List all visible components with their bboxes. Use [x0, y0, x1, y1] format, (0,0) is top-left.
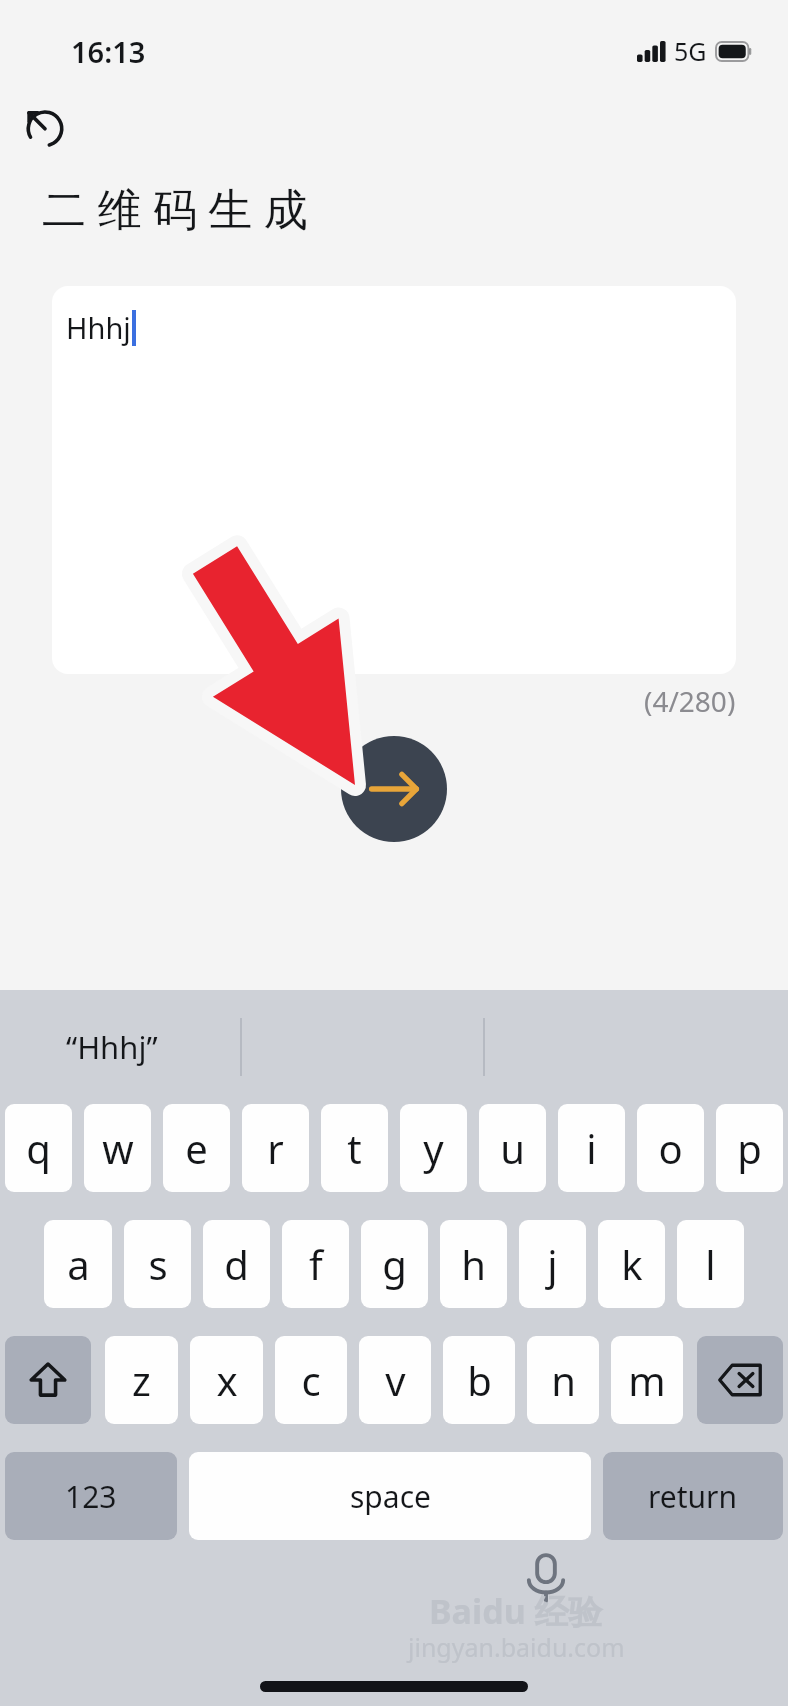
- button[interactable]: x: [190, 1336, 263, 1424]
- button[interactable]: y: [400, 1104, 467, 1192]
- button[interactable]: return: [603, 1452, 783, 1540]
- staticText: Baidu 经验: [429, 1588, 603, 1634]
- button[interactable]: t: [321, 1104, 388, 1192]
- staticText: k: [621, 1237, 643, 1291]
- staticText: e: [185, 1121, 208, 1175]
- staticText: t: [347, 1121, 362, 1175]
- button[interactable]: d: [203, 1220, 270, 1308]
- button[interactable]: b: [443, 1336, 515, 1424]
- button[interactable]: a: [44, 1220, 112, 1308]
- button[interactable]: e: [163, 1104, 230, 1192]
- staticText: y: [423, 1121, 444, 1175]
- button[interactable]: c: [275, 1336, 347, 1424]
- staticText: Hhhj: [66, 308, 131, 347]
- button[interactable]: f: [282, 1220, 349, 1308]
- staticText: r: [267, 1121, 284, 1175]
- button[interactable]: l: [677, 1220, 744, 1308]
- staticText: p: [737, 1121, 762, 1175]
- button[interactable]: Shift: [5, 1336, 91, 1424]
- staticText: i: [586, 1121, 597, 1175]
- staticText: g: [382, 1237, 407, 1291]
- staticText: n: [551, 1353, 576, 1407]
- button[interactable]: “Hhhj”: [66, 1026, 158, 1068]
- staticText: q: [26, 1121, 51, 1175]
- staticText: return: [648, 1476, 738, 1517]
- staticText: 16:13: [71, 32, 146, 71]
- staticText: jingyan.baidu.com: [408, 1630, 625, 1664]
- button[interactable]: Generate QR code: [341, 736, 447, 842]
- staticText: w: [102, 1121, 134, 1175]
- staticText: s: [148, 1237, 168, 1291]
- staticText: o: [658, 1121, 683, 1175]
- button[interactable]: History: [14, 96, 76, 158]
- staticText: l: [705, 1237, 716, 1291]
- staticText: u: [500, 1121, 525, 1175]
- staticText: 123: [65, 1476, 117, 1517]
- staticText: f: [309, 1237, 323, 1291]
- staticText: b: [467, 1353, 492, 1407]
- staticText: d: [224, 1237, 249, 1291]
- staticText: j: [547, 1237, 558, 1291]
- staticText: x: [216, 1353, 238, 1407]
- staticText: h: [461, 1237, 486, 1291]
- button[interactable]: space: [189, 1452, 591, 1540]
- staticText: v: [385, 1353, 406, 1407]
- button[interactable]: g: [361, 1220, 428, 1308]
- button[interactable]: i: [558, 1104, 625, 1192]
- button[interactable]: s: [124, 1220, 191, 1308]
- staticText: 5G: [674, 34, 707, 68]
- button[interactable]: j: [519, 1220, 586, 1308]
- button[interactable]: r: [242, 1104, 309, 1192]
- button[interactable]: v: [359, 1336, 431, 1424]
- staticText: z: [132, 1353, 151, 1407]
- button[interactable]: p: [716, 1104, 783, 1192]
- button[interactable]: n: [527, 1336, 599, 1424]
- button[interactable]: k: [598, 1220, 665, 1308]
- button[interactable]: Dictation: [514, 1546, 578, 1610]
- button[interactable]: z: [105, 1336, 178, 1424]
- button[interactable]: Backspace: [697, 1336, 783, 1424]
- button[interactable]: q: [5, 1104, 72, 1192]
- staticText: (4/280): [644, 682, 736, 720]
- button[interactable]: m: [611, 1336, 683, 1424]
- button[interactable]: w: [84, 1104, 151, 1192]
- staticText: 二 维 码 生 成: [42, 178, 308, 238]
- staticText: c: [301, 1353, 321, 1407]
- staticText: a: [67, 1237, 90, 1291]
- staticText: m: [628, 1353, 666, 1407]
- button[interactable]: 123: [5, 1452, 177, 1540]
- staticText: space: [350, 1476, 431, 1517]
- button[interactable]: o: [637, 1104, 704, 1192]
- button[interactable]: Hhhj: [52, 286, 736, 674]
- button[interactable]: h: [440, 1220, 507, 1308]
- button[interactable]: u: [479, 1104, 546, 1192]
